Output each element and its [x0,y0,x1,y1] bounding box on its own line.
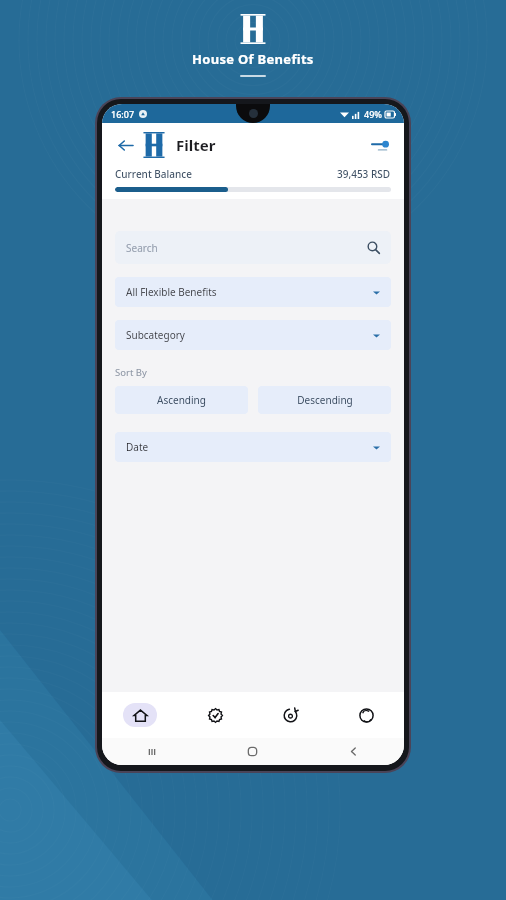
button[interactable]: History [252,692,328,738]
staticText: Subcategory [126,328,185,342]
button[interactable]: Descending [258,386,391,414]
button[interactable]: Home [102,692,177,738]
staticText: 16:07 [111,108,135,120]
staticText: Current Balance [115,167,192,181]
button[interactable]: Back [303,738,404,765]
button[interactable]: Profile [328,692,404,738]
staticText: Filter [176,135,216,155]
staticText: Date [126,440,149,454]
staticText: All Flexible Benefits [126,285,217,299]
button[interactable]: Subcategory [115,320,391,350]
staticText: 39,453 RSD [337,167,391,181]
button[interactable]: Search [115,231,391,264]
button[interactable]: Date [115,432,391,462]
staticText: Descending [297,393,353,407]
button[interactable]: Verified [177,692,252,738]
staticText: Search [126,241,158,255]
button[interactable]: Filter options [366,131,394,159]
button[interactable]: All Flexible Benefits [115,277,391,307]
staticText: Ascending [157,393,206,407]
button[interactable]: Recents [102,738,202,765]
button[interactable]: Ascending [115,386,248,414]
staticText: House Of Benefits [192,50,314,68]
button[interactable]: Home [202,738,303,765]
staticText: 49% [364,108,382,120]
staticText: Sort By [115,366,147,379]
button[interactable]: Back [112,132,138,158]
